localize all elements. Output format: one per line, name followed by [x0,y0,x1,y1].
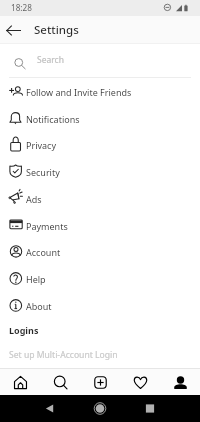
button[interactable]: Payments [0,212,200,239]
button[interactable]: Back [34,395,66,422]
button[interactable]: Account [0,238,200,265]
button[interactable]: Recents [134,395,166,422]
button[interactable]: Privacy [0,131,200,158]
button[interactable]: Ads [0,185,200,212]
button[interactable]: Profile [160,369,200,395]
button[interactable]: New post [80,369,120,395]
staticText: About [26,300,52,312]
button[interactable]: Back [0,16,26,44]
staticText: Settings [34,22,79,38]
staticText: Set up Multi-Account Login [9,349,118,361]
staticText: 18:28 [11,2,32,13]
button[interactable]: Notifications [0,105,200,132]
button[interactable]: Security [0,158,200,185]
button[interactable]: Follow and Invite Friends [0,78,200,105]
button[interactable]: Logins [0,321,200,339]
staticText: Logins [9,324,39,336]
staticText: Payments [26,220,68,232]
staticText: Follow and Invite Friends [26,86,132,98]
button[interactable]: Help [0,265,200,292]
button[interactable]: Home [0,369,40,395]
staticText: Search [37,54,64,66]
staticText: Account [26,246,61,258]
staticText: Security [26,166,60,178]
staticText: Privacy [26,139,57,151]
staticText: Ads [26,193,42,205]
button[interactable]: Activity [120,369,160,395]
staticText: Notifications [26,113,80,125]
button[interactable]: Home [84,395,116,422]
button[interactable]: Search [40,369,80,395]
button[interactable]: Set up Multi-Account Login [0,346,200,364]
staticText: Help [26,273,46,285]
button[interactable]: About [0,292,200,319]
